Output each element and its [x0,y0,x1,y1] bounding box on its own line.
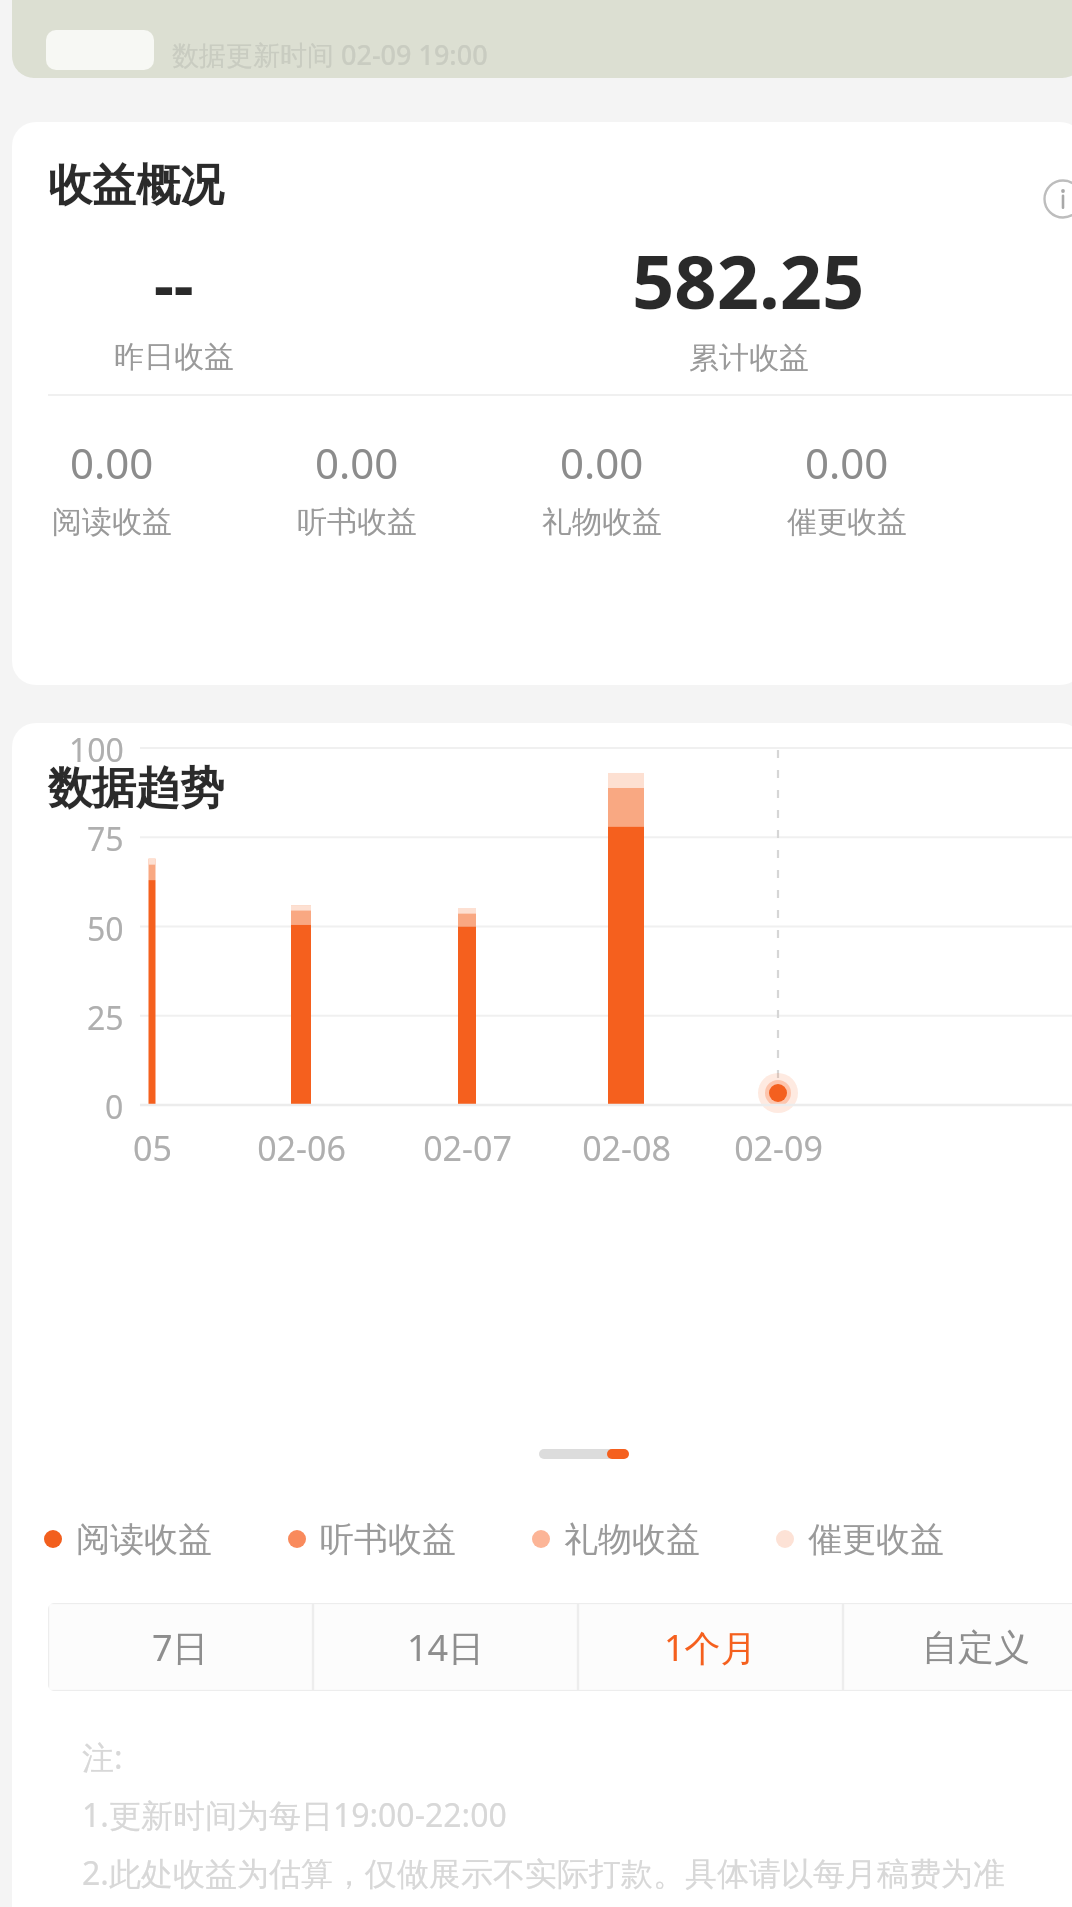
button[interactable]: 0.00 [30,434,194,564]
staticText: 0.00 [560,434,644,491]
button[interactable]: 0.00 [765,434,929,564]
staticText: 礼物收益 [564,1518,700,1561]
staticText: 0.00 [70,434,154,491]
staticText: 1.更新时间为每日19:00-22:00 [82,1793,507,1837]
button[interactable]: 催更收益 [776,1512,944,1566]
button[interactable]: 数据更新时间 02-09 19:00 [12,0,1072,78]
staticText: 0 [105,1085,124,1129]
staticText: 阅读收益 [52,503,172,541]
button[interactable]: 582.25 [622,230,874,377]
staticText: 1个月 [664,1623,757,1672]
button[interactable]: 1个月 [578,1603,843,1691]
staticText: 02-09 [734,1125,823,1171]
staticText: 02-07 [423,1125,512,1171]
staticText: 0.00 [805,434,889,491]
staticText: 昨日收益 [114,338,234,376]
button[interactable]: 14日 [313,1603,578,1691]
staticText: 注: [82,1735,123,1779]
button[interactable]: 听书收益 [288,1512,456,1566]
staticText: 数据更新时间 02-09 19:00 [172,36,488,73]
staticText: 75 [87,817,124,861]
staticText: 14日 [407,1623,485,1672]
staticText: 2.此处收益为估算，仅做展示不实际打款。具体请以每月稿费为准 [82,1851,1005,1895]
staticText: 催更收益 [787,503,907,541]
button[interactable]: 0.00 [520,434,684,564]
staticText: 数据趋势 [48,761,224,816]
button[interactable]: 7日 [48,1603,313,1691]
staticText: 100 [69,728,124,772]
staticText: 25 [87,996,124,1040]
staticText: 05 [133,1125,172,1171]
staticText: 催更收益 [808,1518,944,1561]
staticText: -- [154,242,194,326]
staticText: 收益概况 [48,158,224,213]
button[interactable]: 礼物收益 [532,1512,700,1566]
button[interactable]: -- [48,242,300,376]
staticText: 0.00 [315,434,399,491]
button[interactable]: 0.00 [275,434,439,564]
button[interactable]: 自定义 [843,1603,1072,1691]
staticText: 自定义 [922,1625,1030,1670]
staticText: 阅读收益 [76,1518,212,1561]
staticText: 02-06 [257,1125,346,1171]
staticText: 50 [87,907,124,951]
staticText: 累计收益 [689,339,809,377]
staticText: 听书收益 [297,503,417,541]
button[interactable]: 阅读收益 [44,1512,212,1566]
staticText: 02-08 [582,1125,671,1171]
staticText: 听书收益 [320,1518,456,1561]
staticText: 582.25 [632,230,865,331]
staticText: 礼物收益 [542,503,662,541]
staticText: 7日 [152,1623,209,1672]
button[interactable]: 说明 [1040,176,1072,222]
